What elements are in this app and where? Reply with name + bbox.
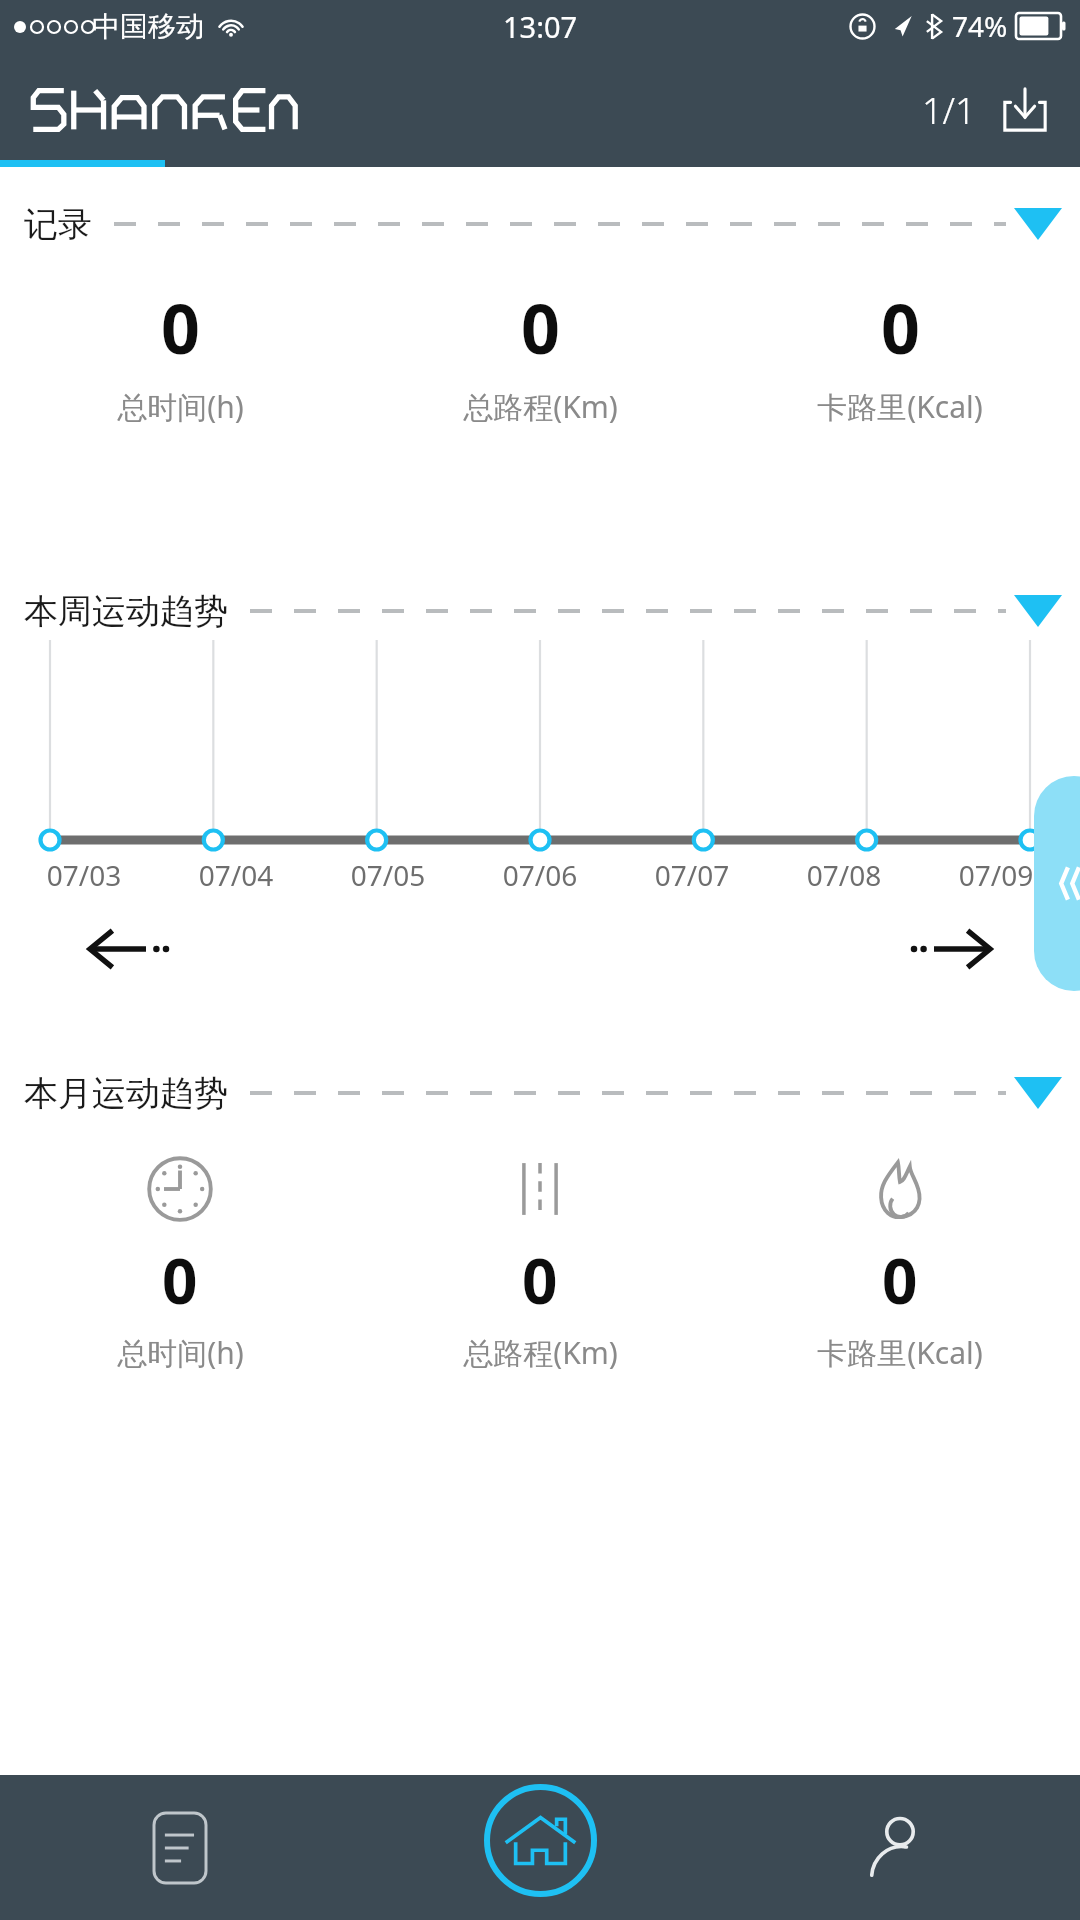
staticText: 0 bbox=[881, 281, 920, 374]
staticText: 本月运动趋势 bbox=[24, 1072, 228, 1115]
staticText: 07/09 bbox=[920, 856, 1072, 894]
staticText: 0 bbox=[162, 1238, 198, 1322]
staticText: 07/06 bbox=[464, 856, 616, 894]
staticText: 0 bbox=[522, 1238, 558, 1322]
staticText: 0 bbox=[521, 281, 560, 374]
staticText: 总时间(h) bbox=[117, 1332, 244, 1373]
staticText: 13:07 bbox=[503, 7, 578, 46]
staticText: 07/05 bbox=[312, 856, 464, 894]
button[interactable]: 记录 bbox=[0, 1775, 360, 1920]
staticText: 卡路里(Kcal) bbox=[817, 1332, 983, 1373]
staticText: 0 bbox=[161, 281, 200, 374]
button[interactable]: 展开 bbox=[1034, 776, 1080, 991]
staticText: 07/08 bbox=[768, 856, 920, 894]
button[interactable]: 下载 bbox=[994, 79, 1056, 141]
staticText: 07/07 bbox=[616, 856, 768, 894]
button[interactable]: 记录 bbox=[0, 195, 1080, 253]
staticText: 74% bbox=[952, 7, 1008, 45]
button[interactable]: 上一周 bbox=[85, 911, 175, 987]
button[interactable]: 0 bbox=[720, 1154, 1080, 1373]
staticText: 卡路里(Kcal) bbox=[817, 386, 983, 427]
button[interactable]: 0 bbox=[0, 1154, 360, 1373]
button[interactable]: 首页 bbox=[483, 1783, 598, 1898]
button[interactable]: 0 bbox=[720, 281, 1080, 427]
button[interactable]: 本月运动趋势 bbox=[0, 1064, 1080, 1122]
staticText: 记录 bbox=[24, 203, 92, 246]
button[interactable]: 0 bbox=[360, 1154, 720, 1373]
staticText: 总时间(h) bbox=[117, 386, 244, 427]
staticText: 0 bbox=[882, 1238, 918, 1322]
staticText: 1/1 bbox=[922, 86, 976, 135]
button[interactable]: 0 bbox=[0, 281, 360, 427]
button[interactable]: 0 bbox=[360, 281, 720, 427]
button[interactable]: 本周运动趋势 bbox=[0, 582, 1080, 640]
staticText: 07/04 bbox=[160, 856, 312, 894]
staticText: 总路程(Km) bbox=[463, 1332, 618, 1373]
staticText: 总路程(Km) bbox=[463, 386, 618, 427]
staticText: 07/03 bbox=[8, 856, 160, 894]
button[interactable]: 下一周 bbox=[905, 911, 995, 987]
staticText: 中国移动 bbox=[92, 9, 204, 44]
button[interactable]: 我的 bbox=[720, 1775, 1080, 1920]
staticText: 本周运动趋势 bbox=[24, 590, 228, 633]
